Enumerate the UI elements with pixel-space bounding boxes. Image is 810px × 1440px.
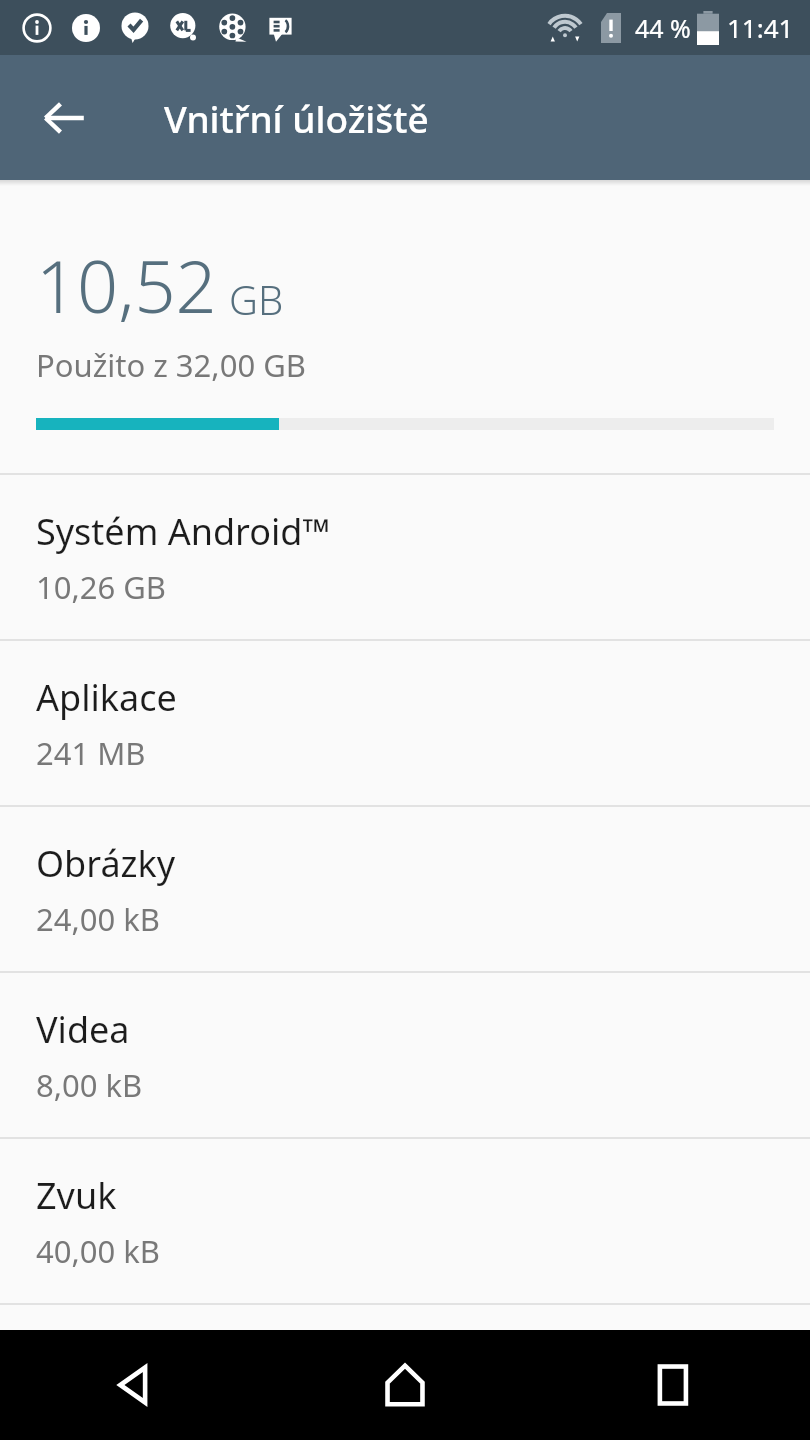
staticText: Vnitřní úložiště	[164, 93, 429, 143]
staticText: Zvuk	[36, 1171, 117, 1220]
button[interactable]: Zvuk	[0, 1139, 810, 1303]
button[interactable]: Systém Android™	[0, 475, 810, 639]
button[interactable]: Home	[270, 1330, 540, 1440]
button[interactable]: Obrázky	[0, 807, 810, 971]
button[interactable]: Videa	[0, 973, 810, 1137]
button[interactable]: Aplikace	[0, 641, 810, 805]
staticText: Obrázky	[36, 839, 176, 888]
button[interactable]: Recents	[540, 1330, 810, 1440]
staticText: Videa	[36, 1005, 130, 1054]
staticText: 44 %	[635, 11, 691, 45]
staticText: GB	[229, 272, 284, 326]
staticText: 40,00 kB	[36, 1230, 160, 1272]
staticText: 8,00 kB	[36, 1064, 143, 1106]
staticText: 24,00 kB	[36, 898, 160, 940]
staticText: Použito z 32,00 GB	[36, 344, 306, 386]
staticText: 10,26 GB	[36, 566, 167, 608]
staticText: Aplikace	[36, 673, 177, 722]
button[interactable]: Back	[0, 1330, 270, 1440]
staticText: Systém Android™	[36, 507, 331, 556]
staticText: 241 MB	[36, 732, 146, 774]
button[interactable]: Back	[24, 78, 104, 158]
staticText: 10,52	[36, 236, 217, 334]
staticText: 11:41	[727, 10, 794, 45]
